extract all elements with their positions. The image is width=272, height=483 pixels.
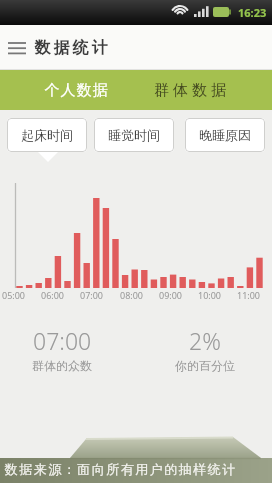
staticText: 06:00 (41, 289, 65, 301)
staticText: 数据统计 (33, 38, 109, 58)
button[interactable]: 晚睡原因 (185, 118, 265, 152)
staticText: 你的百分位 (175, 358, 235, 373)
button[interactable]: 群体数据 (136, 70, 272, 110)
staticText: 08:00 (120, 289, 144, 301)
staticText: 09:00 (159, 289, 183, 301)
staticText: 起床时间 (21, 127, 73, 143)
staticText: 数据来源：面向所有用户的抽样统计 (4, 461, 236, 477)
button[interactable] (4, 35, 30, 61)
staticText: 群体的众数 (32, 358, 92, 373)
staticText: 11:00 (237, 289, 261, 301)
button[interactable]: 个人数据 (0, 70, 136, 110)
staticText: 07:00 (80, 289, 104, 301)
staticText: 10:00 (198, 289, 222, 301)
staticText: 07:00 (33, 325, 92, 356)
staticText: 群体数据 (152, 81, 228, 100)
button[interactable]: 睡觉时间 (94, 118, 174, 152)
staticText: 晚睡原因 (199, 127, 251, 143)
staticText: 个人数据 (44, 81, 108, 100)
staticText: 2% (189, 325, 221, 356)
button[interactable]: 起床时间 (7, 118, 87, 152)
staticText: 16:23 (238, 5, 267, 20)
staticText: 05:00 (2, 289, 26, 301)
staticText: 睡觉时间 (108, 127, 160, 143)
